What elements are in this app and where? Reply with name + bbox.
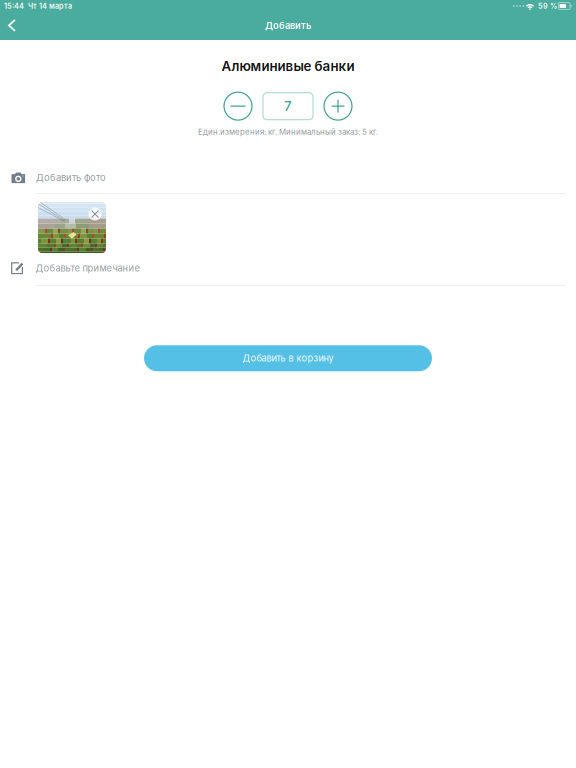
staticText: Добавить в корзину (242, 353, 333, 364)
staticText: 15:44 (4, 2, 24, 10)
button[interactable]: Увеличить количество (324, 92, 352, 120)
button[interactable]: Назад (0, 12, 24, 38)
button[interactable]: Добавить в корзину (144, 345, 432, 371)
staticText: Алюминивые банки (221, 58, 354, 74)
staticText: Добавьте примечание (35, 262, 139, 274)
button[interactable]: Добавить фото (0, 137, 576, 185)
staticText: Чт 14 марта (28, 2, 72, 10)
staticText: Добавить (265, 20, 311, 31)
staticText: Един.измерения: кг. Минимальный заказ: 5… (198, 127, 378, 137)
button[interactable]: Добавьте примечание (0, 253, 576, 275)
staticText: 7 (284, 98, 292, 114)
staticText: Добавить фото (36, 172, 106, 183)
button[interactable]: Удалить фото (88, 207, 102, 221)
staticText: 59 % (538, 2, 557, 10)
button[interactable]: Уменьшить количество (224, 92, 252, 120)
